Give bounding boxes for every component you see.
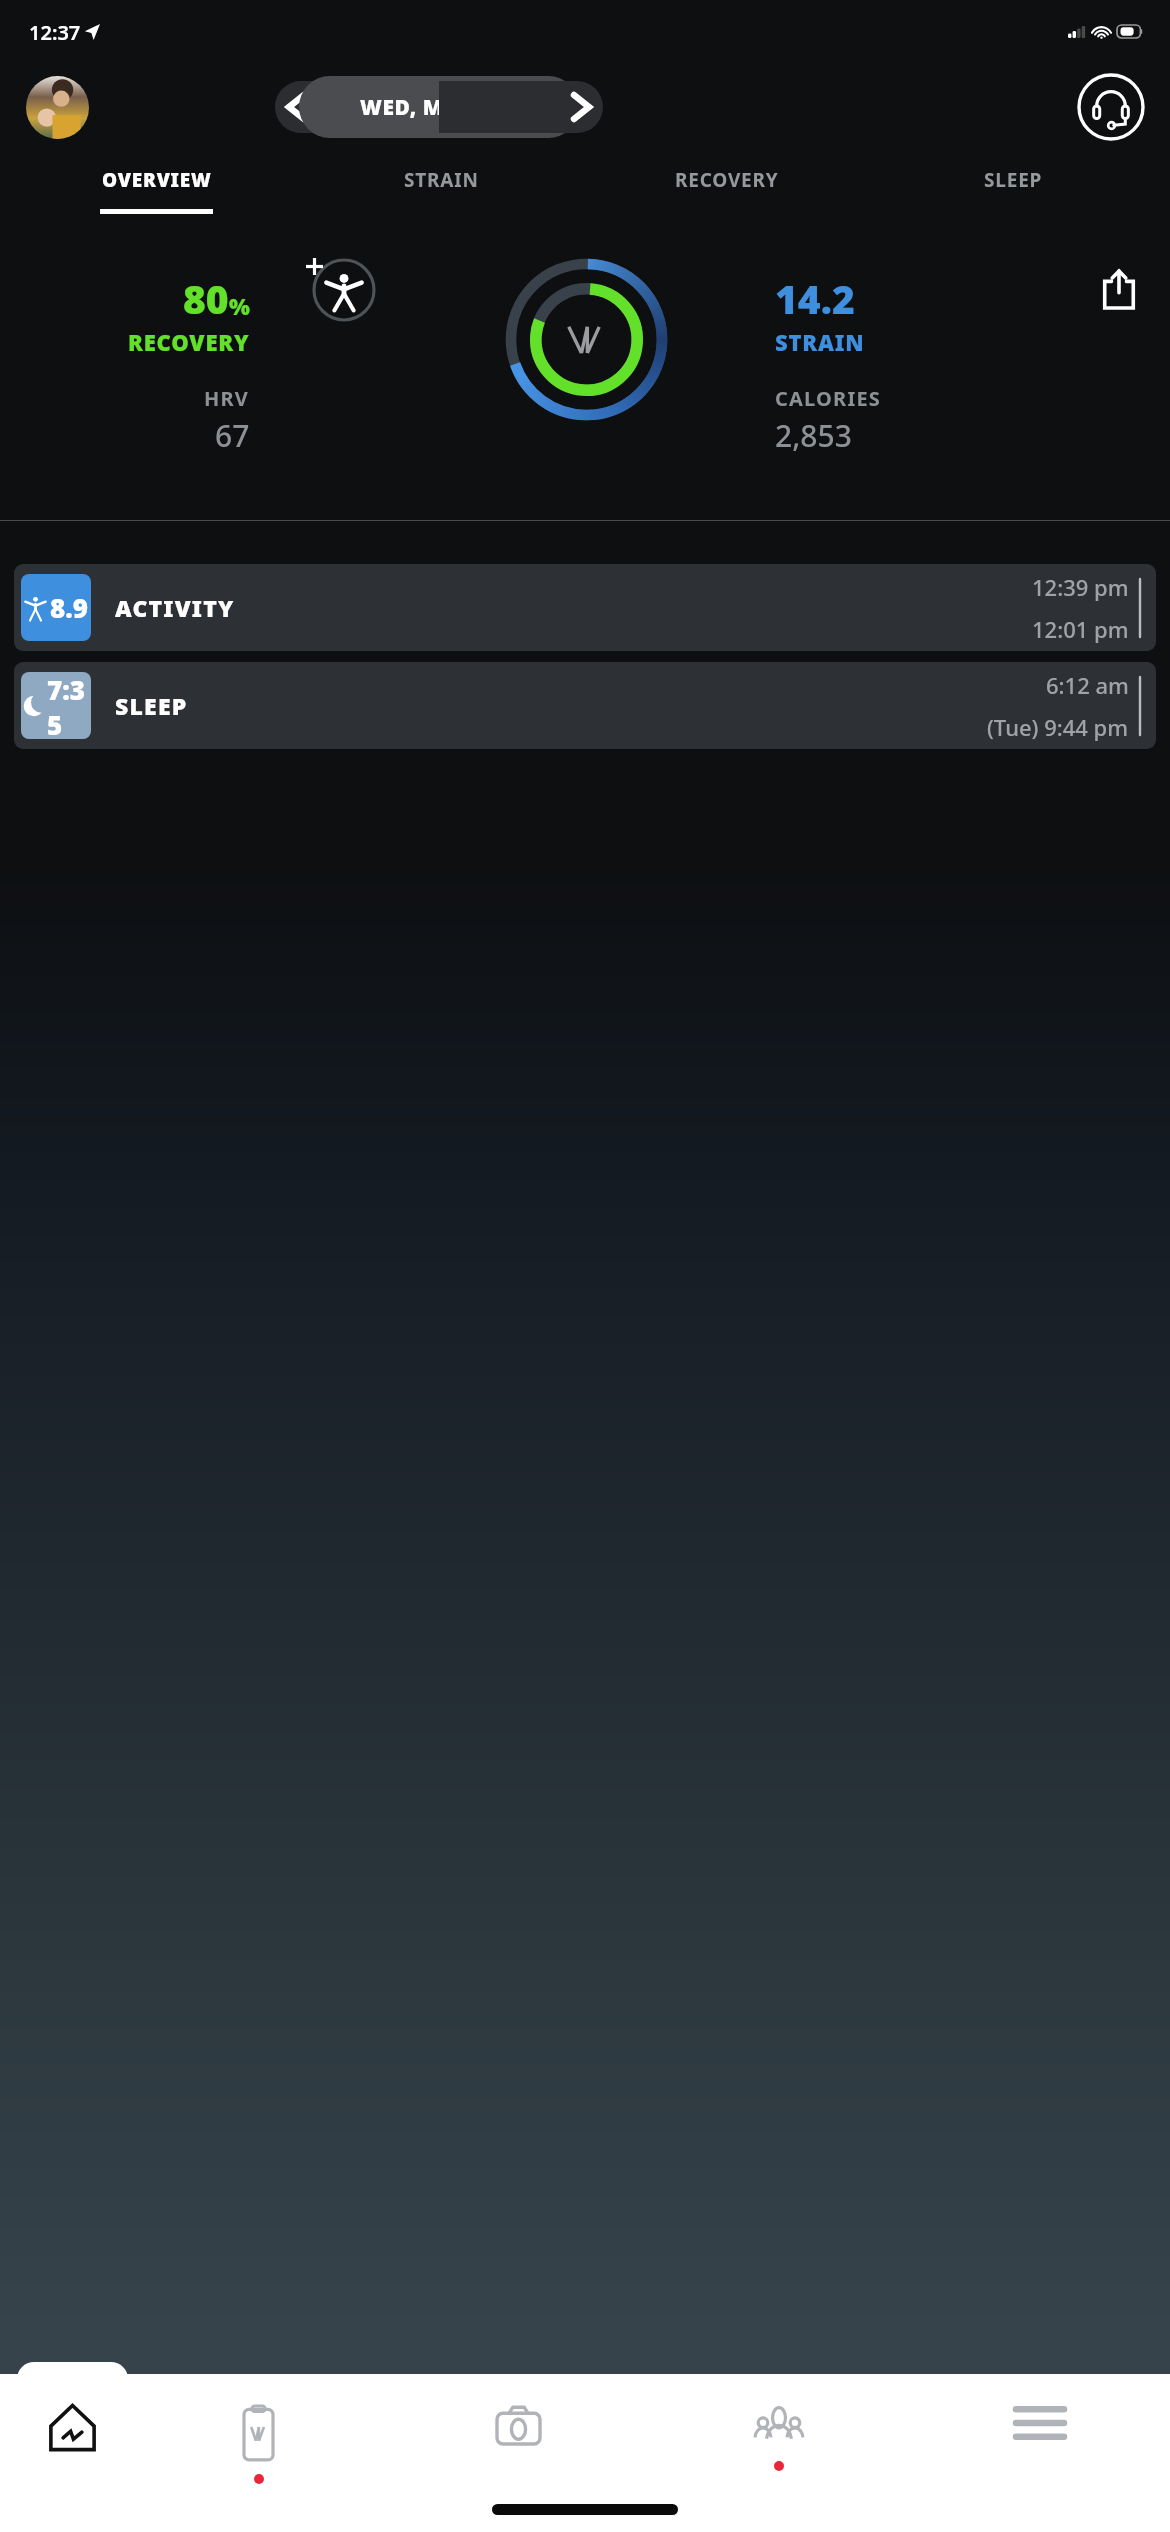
button[interactable]: Share — [1092, 262, 1146, 316]
staticText: STRAIN — [775, 327, 865, 357]
button[interactable]: Menu — [909, 2374, 1170, 2532]
staticText: ACTIVITY — [115, 592, 235, 623]
staticText: RECOVERY — [128, 327, 250, 357]
button[interactable]: STRAIN — [299, 156, 584, 228]
staticText: % — [229, 291, 250, 321]
button[interactable]: 7:35 — [14, 662, 1156, 749]
staticText: 67 — [215, 415, 250, 456]
staticText: STRAIN — [404, 167, 479, 193]
button[interactable]: Next day — [439, 81, 603, 133]
button[interactable]: WED, MAY 4 — [299, 76, 579, 138]
button[interactable]: Profile — [26, 76, 89, 139]
button[interactable]: Recovery and strain dial — [506, 259, 667, 420]
staticText: RECOVERY — [675, 167, 779, 193]
button[interactable]: SLEEP — [870, 156, 1156, 228]
staticText: (Tue) 9:44 pm — [987, 712, 1129, 742]
staticText: OVERVIEW — [102, 167, 212, 193]
staticText: SLEEP — [984, 167, 1043, 193]
button[interactable]: Previous day — [275, 81, 439, 133]
staticText: WED, MAY 4 — [360, 93, 492, 122]
staticText: 12:01 pm — [1032, 614, 1129, 644]
staticText: 12:39 pm — [1032, 572, 1129, 602]
button[interactable]: Journal — [128, 2374, 388, 2532]
staticText: 12:37 — [29, 19, 81, 46]
staticText: 80 — [183, 272, 229, 325]
button[interactable]: RECOVERY — [584, 156, 870, 228]
staticText: SLEEP — [115, 690, 188, 721]
staticText: 2,853 — [775, 415, 852, 456]
button[interactable]: Camera — [388, 2374, 648, 2532]
button[interactable]: Community — [648, 2374, 909, 2532]
staticText: CALORIES — [775, 385, 881, 412]
staticText: 7:35 — [47, 672, 91, 739]
button[interactable]: Home — [17, 2362, 128, 2532]
staticText: 14.2 — [775, 272, 855, 325]
staticText: 6:12 am — [1046, 670, 1129, 700]
button[interactable]: 8.9 — [14, 564, 1156, 651]
button[interactable]: Support — [1077, 73, 1145, 141]
staticText: 8.9 — [50, 590, 88, 625]
button[interactable]: OVERVIEW — [14, 156, 299, 228]
staticText: HRV — [204, 385, 250, 412]
button[interactable]: Add activity — [312, 258, 376, 322]
